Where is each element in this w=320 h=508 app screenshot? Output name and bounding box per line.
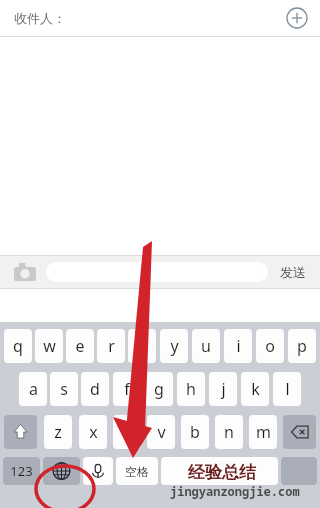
button[interactable]: f <box>113 372 141 406</box>
button[interactable]: k <box>241 372 269 406</box>
button[interactable]: d <box>81 372 109 406</box>
staticText: p <box>297 335 307 357</box>
staticText: y <box>170 335 179 357</box>
staticText: d <box>90 378 100 400</box>
staticText: i <box>236 335 241 357</box>
button[interactable]: p <box>288 329 316 363</box>
staticText: 发送 <box>280 264 306 280</box>
button[interactable]: g <box>145 372 173 406</box>
staticText: jingyanzongjie.com <box>170 483 300 499</box>
button[interactable]: 发送 <box>278 264 308 280</box>
staticText: m <box>256 421 271 443</box>
staticText: l <box>285 378 290 400</box>
button[interactable]: Add recipient <box>286 7 308 29</box>
staticText: 123 <box>10 462 33 480</box>
button[interactable]: Shift <box>4 415 37 449</box>
staticText: r <box>108 335 115 357</box>
staticText: c <box>123 421 131 443</box>
staticText: w <box>43 335 56 357</box>
button[interactable]: q <box>4 329 32 363</box>
button[interactable]: t <box>128 329 156 363</box>
staticText: z <box>54 421 62 443</box>
staticText: s <box>60 378 68 400</box>
button[interactable]: Return <box>281 457 317 485</box>
staticText: a <box>29 378 38 400</box>
staticText: v <box>157 421 166 443</box>
staticText: j <box>221 378 226 400</box>
button[interactable]: i <box>224 329 252 363</box>
staticText: f <box>124 378 130 400</box>
staticText: g <box>154 378 164 400</box>
staticText: k <box>251 378 260 400</box>
button[interactable]: w <box>35 329 63 363</box>
staticText: n <box>224 421 234 443</box>
button[interactable]: u <box>192 329 220 363</box>
staticText: x <box>89 421 98 443</box>
button[interactable]: Camera <box>14 263 36 281</box>
button[interactable]: 123 <box>3 457 40 485</box>
button[interactable]: y <box>160 329 188 363</box>
button[interactable]: b <box>181 415 209 449</box>
staticText: q <box>13 335 23 357</box>
button[interactable]: 空格 <box>116 457 158 485</box>
staticText: 空格 <box>125 464 149 479</box>
staticText: e <box>75 335 85 357</box>
button[interactable]: v <box>147 415 175 449</box>
button[interactable] <box>161 457 278 485</box>
button[interactable]: a <box>19 372 47 406</box>
button[interactable]: l <box>273 372 301 406</box>
button[interactable]: z <box>44 415 72 449</box>
button[interactable]: j <box>209 372 237 406</box>
button[interactable]: h <box>177 372 205 406</box>
button[interactable]: r <box>97 329 125 363</box>
staticText: h <box>186 378 196 400</box>
button[interactable]: x <box>79 415 107 449</box>
button[interactable]: Switch language <box>43 457 80 485</box>
staticText: 经验总结 <box>188 462 256 483</box>
button[interactable]: s <box>50 372 78 406</box>
button[interactable]: n <box>215 415 243 449</box>
staticText: o <box>265 335 275 357</box>
staticText: b <box>190 421 200 443</box>
button[interactable]: Voice input <box>83 457 113 485</box>
button[interactable]: Backspace <box>283 415 316 449</box>
button[interactable]: c <box>113 415 141 449</box>
button[interactable] <box>46 262 268 282</box>
staticText: u <box>201 335 211 357</box>
button[interactable]: e <box>66 329 94 363</box>
button[interactable]: m <box>249 415 277 449</box>
staticText: 收件人： <box>14 10 66 26</box>
button[interactable]: o <box>256 329 284 363</box>
